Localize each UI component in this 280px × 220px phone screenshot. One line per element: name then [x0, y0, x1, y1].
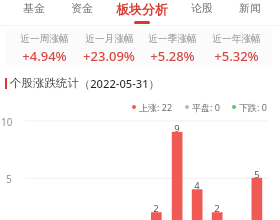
staticText: 10	[1, 115, 13, 129]
button[interactable]: 近一月涨幅	[74, 33, 144, 65]
staticText: 基金	[23, 1, 45, 15]
button[interactable]: 近一周涨幅	[9, 33, 79, 65]
button[interactable]: 基金	[14, 0, 54, 25]
staticText: 资金	[71, 1, 93, 15]
button[interactable]: 近一年涨幅	[201, 33, 271, 65]
staticText: 5	[247, 168, 267, 181]
staticText: （2022-05-31）	[79, 76, 160, 91]
staticText: 近一月涨幅	[85, 33, 134, 45]
staticText: 下跌: 0	[239, 101, 267, 113]
staticText: 2	[146, 202, 166, 215]
button[interactable]: 近一季涨幅	[137, 33, 207, 65]
staticText: +5.28%	[150, 47, 195, 65]
staticText: 上涨: 22	[139, 101, 173, 113]
staticText: +4.94%	[22, 47, 67, 65]
staticText: 板块分析	[116, 1, 168, 17]
staticText: 2	[207, 202, 227, 215]
button[interactable]: 个股涨跌统计	[0, 75, 280, 91]
staticText: 新闻	[239, 1, 261, 15]
staticText: +5.32%	[214, 47, 259, 65]
staticText: +23.09%	[83, 47, 135, 65]
button[interactable]: 新闻	[230, 0, 270, 25]
staticText: 9	[167, 122, 187, 135]
staticText: 近一季涨幅	[148, 33, 197, 45]
staticText: 5	[6, 172, 12, 186]
staticText: 论股	[191, 1, 213, 15]
button[interactable]: 资金	[62, 0, 102, 25]
staticText: 4	[187, 179, 207, 192]
staticText: 个股涨跌统计	[10, 76, 79, 90]
staticText: 近一年涨幅	[212, 33, 261, 45]
button[interactable]: 论股	[182, 0, 222, 25]
button[interactable]: 板块分析	[114, 0, 170, 25]
staticText: 平盘: 0	[192, 101, 220, 113]
staticText: 近一周涨幅	[20, 33, 69, 45]
